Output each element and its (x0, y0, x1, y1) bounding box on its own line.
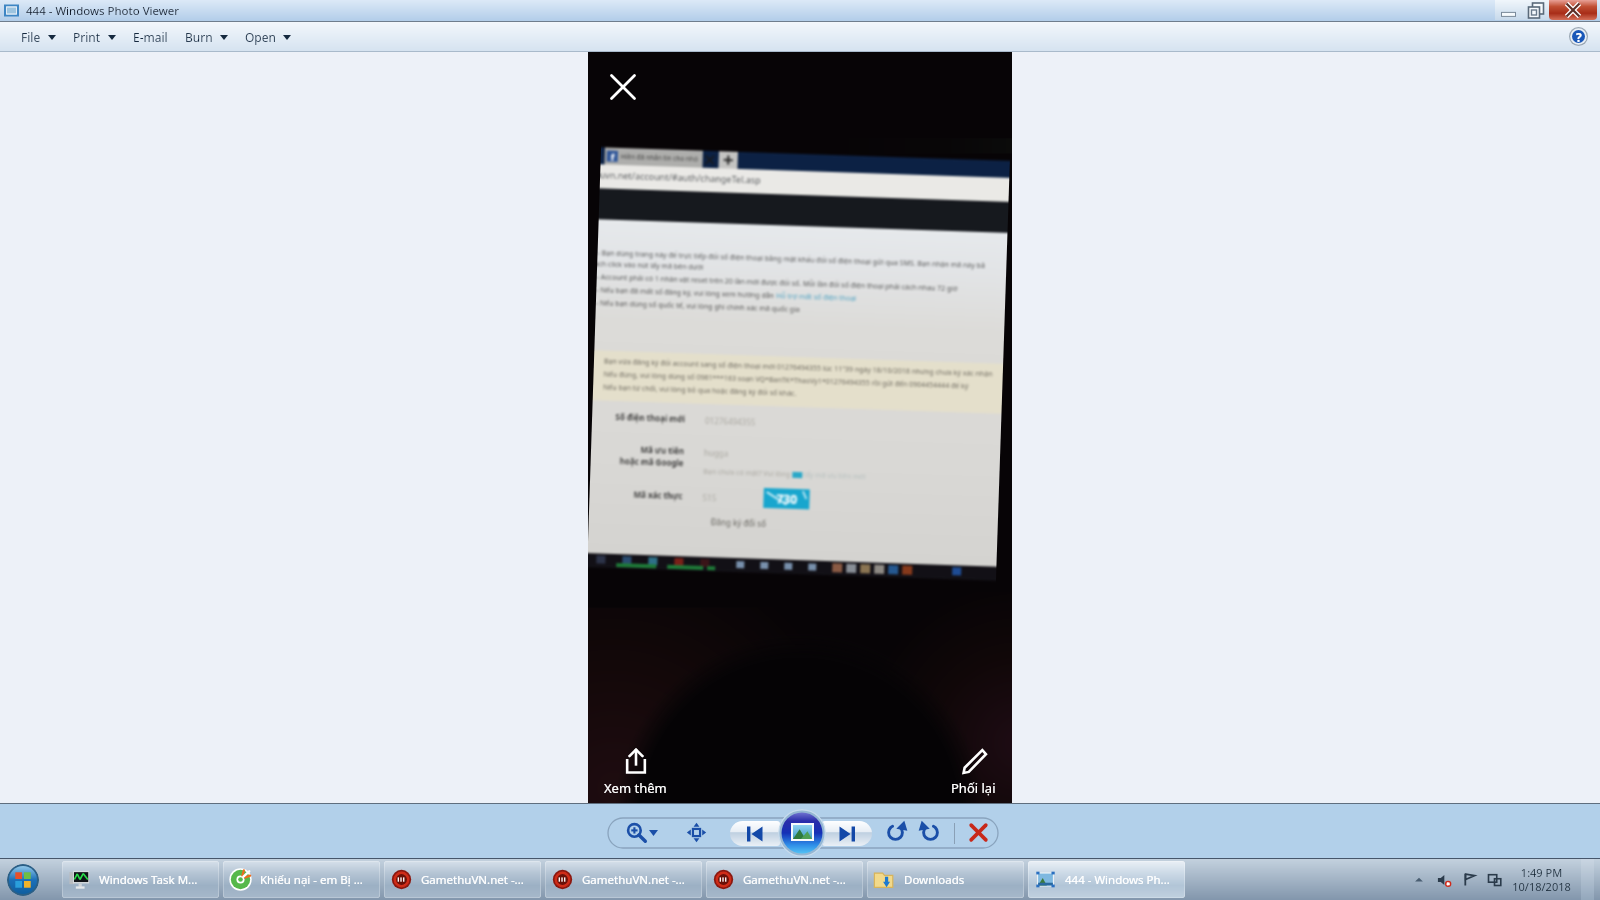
button[interactable]: GamethuVN.net -... (384, 861, 541, 898)
button[interactable]: Help (1569, 27, 1588, 46)
staticText: 444 - Windows Photo Viewer (26, 3, 180, 19)
staticText: E-mail (133, 29, 168, 45)
staticText: Downloads (904, 872, 965, 888)
button[interactable]: Windows Task M... (62, 861, 219, 898)
staticText: 444 - Windows Ph... (1065, 872, 1170, 888)
staticText: Bạn chưa có mật? Vui lòng (703, 467, 792, 480)
button[interactable]: Fit to window (686, 822, 707, 843)
staticText: Print (73, 29, 101, 45)
button[interactable]: Delete (967, 821, 990, 844)
staticText: Hiền đã nhắn tin cho nhó (621, 152, 699, 164)
staticText: Xem thêm (604, 779, 667, 797)
staticText: lấy mã ưu tiên mới (802, 470, 866, 482)
staticText: 515 (702, 492, 717, 503)
staticText: Windows Task M... (99, 872, 198, 888)
button[interactable]: Downloads (867, 861, 1024, 898)
staticText: huvn.net/account/#auth/changeTel.asp (600, 168, 761, 186)
button[interactable]: File (14, 24, 66, 50)
button[interactable]: Khiếu nại - em Bị ... (223, 861, 380, 898)
staticText: Nếu đúng, vui lòng dùng số 0981***163 so… (603, 369, 969, 392)
button[interactable]: Close window (1549, 0, 1597, 20)
staticText: 1.- Bạn dùng trang này để trực tiếp đổi … (597, 248, 985, 271)
staticText: hugga (704, 447, 729, 459)
button[interactable]: Xem thêm (604, 748, 667, 797)
button[interactable]: Close (605, 69, 641, 105)
staticText: GamethuVN.net -... (582, 872, 685, 888)
staticText: Nếu bạn từ chối, vui lòng bỏ qua hoặc đă… (603, 382, 797, 399)
button[interactable]: GamethuVN.net -... (706, 861, 863, 898)
staticText: 730 (776, 490, 798, 507)
staticText: Mã xác thực (633, 489, 683, 501)
button[interactable]: Minimize (1495, 0, 1522, 20)
button[interactable]: Start (7, 864, 39, 896)
button[interactable]: Next image (822, 821, 872, 846)
staticText: GamethuVN.net -... (421, 872, 524, 888)
staticText: 4.- Nếu bạn dùng số quốc tế, vui lòng gh… (596, 298, 800, 315)
button[interactable]: Previous image (730, 821, 780, 846)
staticText: Open (245, 29, 276, 45)
button[interactable]: E-mail (126, 24, 178, 50)
button[interactable]: GamethuVN.net -... (545, 861, 702, 898)
staticText: 3.- Nếu bạn đã mất số đăng ký, vui lòng … (596, 285, 776, 301)
staticText: Đăng ký đổi số (710, 516, 767, 529)
button[interactable]: Rotate clockwise (919, 821, 942, 844)
staticText: Mã ưu tiên (640, 444, 684, 456)
staticText: Số điện thoại mới (615, 411, 685, 424)
staticText: 01276494355 (705, 415, 756, 428)
staticText: f (611, 151, 615, 162)
button[interactable]: Rotate counterclockwise (884, 821, 907, 844)
staticText: Hỗ trợ mất số điện thoại (776, 291, 856, 304)
button[interactable]: Zoom (626, 822, 647, 843)
staticText: 1:49 PM 10/18/2018 (1512, 865, 1571, 894)
staticText: ? (1576, 29, 1582, 45)
button[interactable]: Restore (1522, 0, 1549, 20)
staticText: GamethuVN.net -... (743, 872, 846, 888)
button[interactable]: Play slide show (778, 809, 826, 857)
staticText: cách click vào nút lấy mã bên dưới (597, 259, 704, 273)
button[interactable]: Print (66, 24, 126, 50)
staticText: hoặc mã Google (619, 455, 684, 468)
staticText: Burn (185, 29, 213, 45)
staticText: Bạn vừa đăng ký đổi account sang số điện… (604, 357, 993, 379)
button[interactable]: Open (238, 24, 301, 50)
button[interactable]: Show desktop (1581, 859, 1594, 900)
staticText: 2.- Account phải có 1 nhân vật reset trê… (597, 272, 958, 294)
staticText: Khiếu nại - em Bị ... (260, 872, 363, 888)
button[interactable]: 444 - Windows Ph... (1028, 861, 1185, 898)
button[interactable]: Phối lại (951, 748, 996, 797)
staticText: File (21, 29, 41, 45)
staticText: Phối lại (951, 779, 996, 797)
button[interactable]: Burn (178, 24, 238, 50)
